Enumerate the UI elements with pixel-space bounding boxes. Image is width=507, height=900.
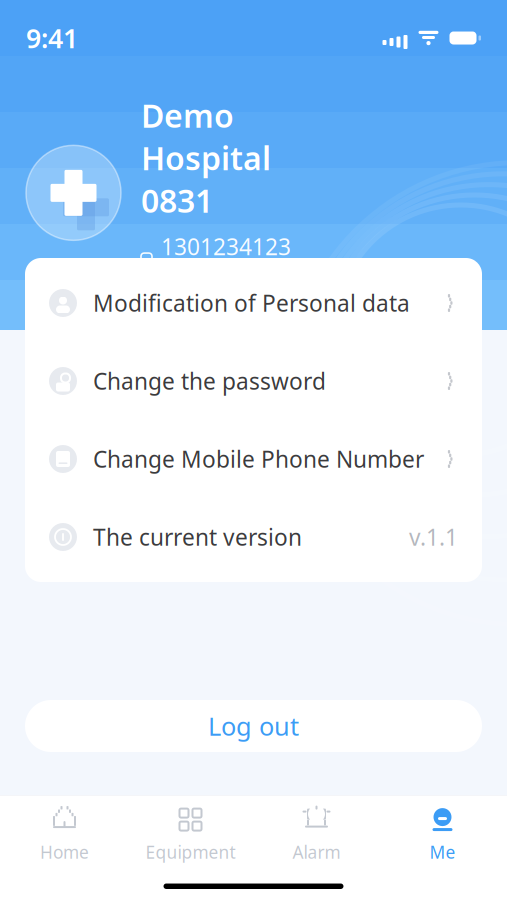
staticText: v.1.1 xyxy=(409,522,458,552)
staticText: Home xyxy=(40,841,89,864)
staticText: Equipment xyxy=(145,841,235,864)
button[interactable]: Home xyxy=(1,806,127,864)
staticText: 9:41 xyxy=(26,20,78,56)
staticText: Demo Hospital 0831 xyxy=(141,94,271,221)
staticText: Me xyxy=(429,841,455,864)
staticText: Alarm xyxy=(292,841,340,864)
button[interactable]: Change the password xyxy=(25,342,482,420)
button[interactable]: Change Mobile Phone Number xyxy=(25,420,482,498)
staticText: Modification of Personal data xyxy=(93,288,410,318)
staticText: 13012341234 xyxy=(161,231,291,292)
button[interactable]: Modification of Personal data xyxy=(25,264,482,342)
staticText: The current version xyxy=(93,522,302,552)
button[interactable]: Equipment xyxy=(127,806,253,864)
staticText: Log out xyxy=(208,709,299,743)
staticText: Change Mobile Phone Number xyxy=(93,444,424,474)
button[interactable]: The current version xyxy=(25,498,482,576)
button[interactable]: Me xyxy=(379,806,505,864)
button[interactable]: Alarm xyxy=(253,806,379,864)
button[interactable]: Log out xyxy=(0,700,507,752)
staticText: Change the password xyxy=(93,366,326,396)
